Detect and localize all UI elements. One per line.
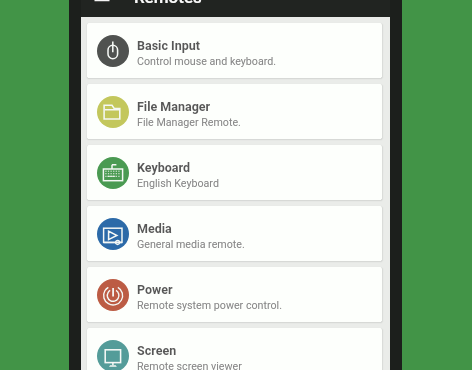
staticText: File Manager Remote. (137, 116, 241, 129)
staticText: File Manager (137, 99, 211, 114)
staticText: Keyboard (137, 160, 191, 175)
staticText: Screen (137, 343, 177, 358)
button[interactable]: File Manager (87, 84, 382, 139)
staticText: Power (137, 282, 173, 297)
button[interactable]: Screen (87, 328, 382, 370)
staticText: Media (137, 221, 172, 236)
staticText: Remote screen viewer (137, 360, 242, 370)
staticText: Control mouse and keyboard. (137, 55, 277, 68)
staticText: Basic Input (137, 38, 200, 53)
button[interactable]: Basic Input (87, 23, 382, 78)
staticText: English Keyboard (137, 177, 219, 190)
staticText: General media remote. (137, 238, 245, 251)
button[interactable]: Media (87, 206, 382, 261)
staticText: Remotes (134, 0, 202, 4)
button[interactable]: Keyboard (87, 145, 382, 200)
button[interactable]: Power (87, 267, 382, 322)
staticText: Remote system power control. (137, 299, 282, 312)
